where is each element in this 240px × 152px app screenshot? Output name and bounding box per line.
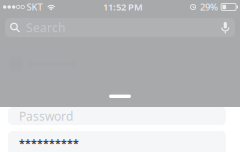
staticText: SKT (26, 1, 42, 13)
staticText: 29% (200, 1, 218, 13)
staticText: ********** (19, 136, 79, 150)
staticText: 11:52 PM (103, 1, 143, 13)
button[interactable]: Search (5, 18, 235, 37)
staticText: Password (19, 108, 73, 124)
staticText: Search (26, 19, 65, 35)
